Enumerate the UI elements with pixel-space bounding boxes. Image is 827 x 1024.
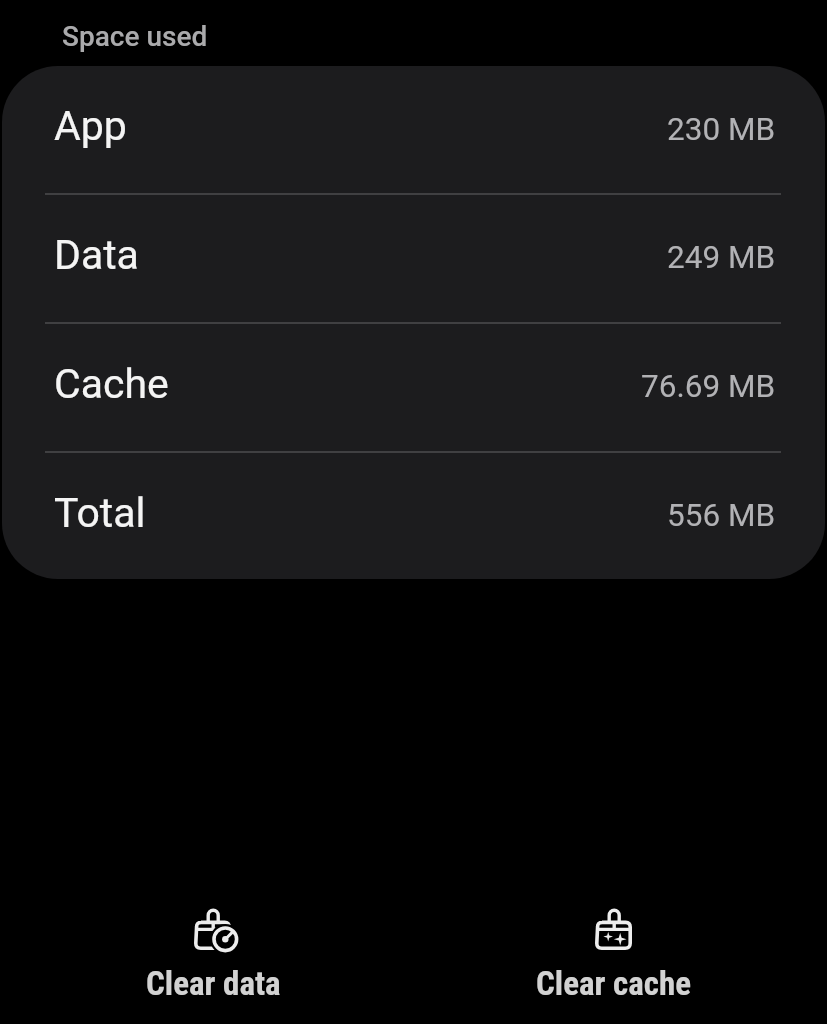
- staticText: Clear data: [146, 964, 281, 1003]
- staticText: Space used: [62, 20, 208, 53]
- button[interactable]: Clear cache: [504, 896, 724, 1003]
- staticText: Total: [54, 489, 146, 537]
- staticText: Cache: [54, 360, 169, 408]
- button[interactable]: App: [2, 66, 825, 192]
- staticText: 76.69 MB: [641, 368, 776, 405]
- staticText: 556 MB: [667, 497, 776, 534]
- button[interactable]: Clear data: [103, 896, 323, 1003]
- staticText: Data: [54, 231, 139, 279]
- staticText: 249 MB: [667, 239, 776, 276]
- button[interactable]: Data: [2, 194, 825, 321]
- button[interactable]: Cache: [2, 323, 825, 450]
- button[interactable]: Total: [2, 452, 825, 579]
- staticText: Clear cache: [536, 964, 692, 1003]
- staticText: 230 MB: [667, 111, 776, 148]
- staticText: App: [54, 102, 127, 150]
